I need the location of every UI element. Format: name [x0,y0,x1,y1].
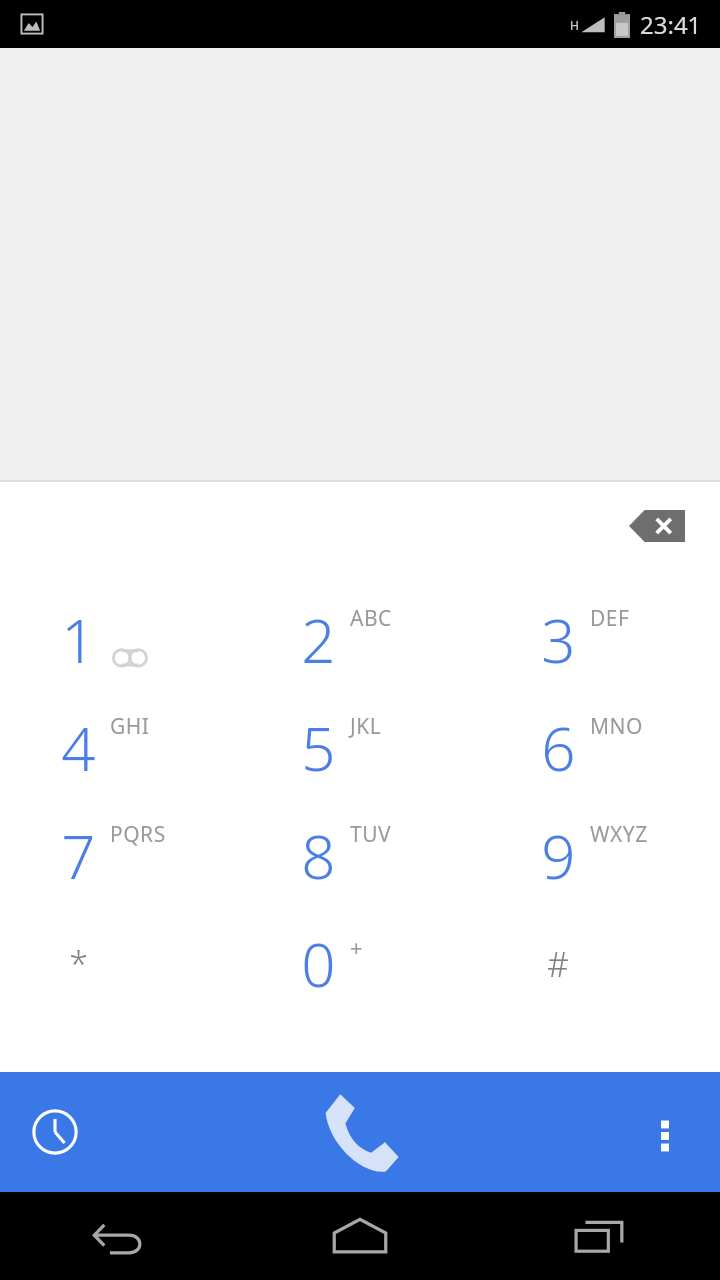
staticText: 6 [541,707,576,789]
staticText: # [547,941,569,987]
staticText: WXYZ [590,820,648,849]
button[interactable]: * [0,910,240,1018]
button[interactable]: Home [240,1192,480,1280]
staticText: 5 [301,707,336,789]
staticText: 8 [301,815,336,897]
button[interactable]: 3 [480,586,720,694]
staticText: 2 [301,599,336,681]
button[interactable]: Back [0,1192,240,1280]
button[interactable]: Recent apps [480,1192,720,1280]
staticText: H [570,17,579,33]
button[interactable]: 9 [480,802,720,910]
button[interactable]: # [480,910,720,1018]
button[interactable]: Call [110,1072,610,1192]
staticText: 23:41 [640,8,702,41]
staticText: 4 [61,707,96,789]
button[interactable]: More options [610,1072,720,1192]
staticText: PQRS [110,820,166,849]
button[interactable]: 1 [0,586,240,694]
staticText: GHI [110,712,150,741]
staticText: DEF [590,604,630,633]
button[interactable]: 2 [240,586,480,694]
staticText: MNO [590,712,643,741]
button[interactable]: 0 [240,910,480,1018]
staticText: JKL [350,712,382,741]
button[interactable]: 5 [240,694,480,802]
button[interactable]: Call history [0,1072,110,1192]
staticText: + [350,932,363,962]
button[interactable]: Backspace [629,510,685,542]
staticText: TUV [350,820,392,849]
staticText: 3 [541,599,576,681]
staticText: ABC [350,604,392,633]
button[interactable]: 6 [480,694,720,802]
button[interactable]: 7 [0,802,240,910]
staticText: * [69,941,88,987]
button[interactable]: 4 [0,694,240,802]
button[interactable]: 8 [240,802,480,910]
staticText: 1 [61,599,96,681]
staticText: 9 [541,815,576,897]
staticText: 7 [61,815,96,897]
staticText: 0 [301,923,336,1005]
